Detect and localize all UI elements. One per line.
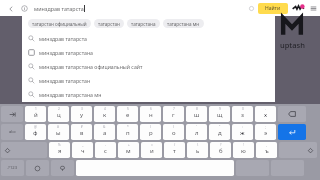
button[interactable]: .?123 [1, 160, 24, 176]
staticText: 9 [219, 107, 221, 111]
button[interactable]: # [48, 124, 69, 140]
button[interactable] [51, 160, 74, 176]
button[interactable]: ₽ [71, 124, 92, 140]
staticText: : [242, 125, 243, 129]
button[interactable] [279, 142, 317, 158]
staticText: ₽ [81, 125, 83, 129]
button[interactable]: Back [5, 3, 16, 14]
button[interactable]: 0 [232, 106, 253, 122]
staticText: минздрав татарста [39, 35, 87, 42]
button[interactable]: татарстана мн [163, 19, 204, 28]
staticText: татарстана мн [167, 21, 200, 27]
button[interactable] [1, 106, 23, 122]
button[interactable]: минздрав татарстана официальный сайт [22, 59, 275, 73]
staticText: минздрав татарстана [39, 49, 94, 56]
staticText: э [264, 129, 267, 137]
staticText: я [58, 147, 62, 155]
button[interactable]: ? [210, 142, 231, 158]
button[interactable]: \ [187, 142, 208, 158]
button[interactable]: " [209, 124, 230, 140]
staticText: ю [241, 147, 246, 155]
button[interactable]: abc [1, 124, 23, 140]
staticText: б [219, 147, 223, 155]
staticText: 2 [58, 107, 60, 111]
staticText: 1 [35, 107, 37, 111]
staticText: _ [82, 143, 84, 147]
button[interactable]: % [49, 142, 70, 158]
button[interactable]: : [232, 124, 253, 140]
button[interactable]: = [141, 142, 162, 158]
staticText: ( [150, 125, 151, 129]
staticText: 6 [150, 107, 152, 111]
staticText: п [126, 129, 130, 137]
staticText: 3 [81, 107, 83, 111]
staticText: в [80, 129, 84, 137]
button[interactable]: _ [72, 142, 93, 158]
button[interactable]: Site info [19, 3, 30, 14]
staticText: Найти [265, 5, 281, 12]
button[interactable]: татарстана [127, 19, 160, 28]
staticText: ц [57, 111, 61, 119]
button[interactable]: 1 [25, 106, 46, 122]
button[interactable]: минздрав татарста [22, 31, 275, 45]
button[interactable] [278, 106, 306, 122]
button[interactable]: , [256, 142, 277, 158]
button[interactable]: ( [140, 124, 161, 140]
button[interactable]: минздрав татарстан [22, 73, 275, 87]
button[interactable]: Logo [291, 1, 305, 15]
staticText: ? [220, 143, 222, 147]
button[interactable] [26, 160, 49, 176]
staticText: к [103, 111, 107, 119]
button[interactable]: 7 [163, 106, 184, 122]
button[interactable]: / [164, 142, 185, 158]
button[interactable]: ! [233, 142, 254, 158]
staticText: ' [196, 125, 197, 129]
button[interactable]: татарстан официальный [28, 19, 91, 28]
button[interactable]: Clear [246, 3, 256, 13]
button[interactable] [1, 142, 47, 158]
button[interactable]: * [117, 124, 138, 140]
button[interactable]: + [118, 142, 139, 158]
staticText: - [105, 143, 107, 147]
button[interactable]: 5 [117, 106, 138, 122]
button[interactable]: 4 [94, 106, 115, 122]
button[interactable]: 9 [209, 106, 230, 122]
button[interactable]: ' [186, 124, 207, 140]
button[interactable] [278, 124, 306, 140]
staticText: ч [81, 147, 85, 155]
button[interactable]: - [95, 142, 116, 158]
button[interactable]: минздрав татарстана мн [22, 87, 275, 101]
button[interactable]: Menu [307, 2, 320, 15]
button[interactable]: - [255, 106, 276, 122]
button[interactable]: & [94, 124, 115, 140]
staticText: - [265, 107, 267, 111]
button[interactable]: 6 [140, 106, 161, 122]
button[interactable]: Найти [258, 3, 288, 14]
staticText: татарстан официальный [32, 21, 87, 27]
button[interactable]: ) [163, 124, 184, 140]
button[interactable]: 2 [48, 106, 69, 122]
staticText: м [126, 147, 131, 155]
staticText: # [57, 125, 60, 129]
staticText: минздрав татарстан [39, 77, 91, 84]
button[interactable]: @ [25, 124, 46, 140]
staticText: @ [34, 125, 37, 129]
button[interactable]: 3 [71, 106, 92, 122]
staticText: г [172, 111, 175, 119]
staticText: х [264, 111, 268, 119]
staticText: , [266, 143, 267, 147]
button[interactable]: 8 [186, 106, 207, 122]
staticText: у [80, 111, 84, 119]
button[interactable]: татарстан [94, 19, 124, 28]
staticText: .?123 [7, 165, 18, 171]
button[interactable]: ; [255, 124, 276, 140]
staticText: о [172, 129, 176, 137]
staticText: й [34, 111, 38, 119]
button[interactable]: минздрав татарстана [22, 45, 275, 59]
staticText: ь [196, 147, 200, 155]
staticText: 8 [196, 107, 198, 111]
button[interactable]: минздрав татарста [34, 3, 243, 14]
